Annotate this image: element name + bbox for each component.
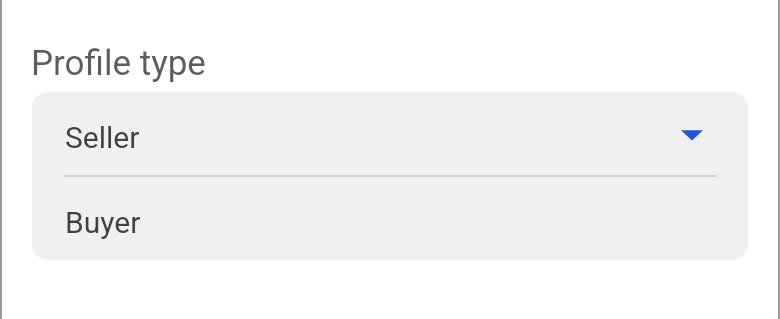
button[interactable]: Seller <box>32 92 748 176</box>
button[interactable]: Collapse profile type dropdown <box>664 107 720 163</box>
staticText: Seller <box>65 120 140 155</box>
button[interactable]: Buyer <box>32 177 748 260</box>
staticText: Buyer <box>65 205 141 240</box>
staticText: Profile type <box>31 43 206 84</box>
